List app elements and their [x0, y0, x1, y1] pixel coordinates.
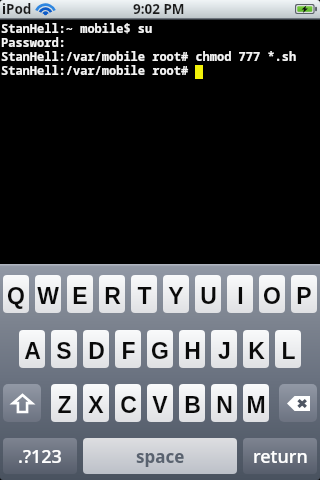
staticText: X	[88, 392, 104, 418]
staticText: U	[200, 283, 217, 309]
staticText: V	[152, 392, 168, 418]
button[interactable]: H	[179, 330, 205, 368]
staticText: B	[184, 392, 201, 418]
staticText: T	[137, 283, 152, 309]
staticText: S	[56, 338, 72, 364]
staticText: D	[88, 338, 105, 364]
button[interactable]: Y	[163, 275, 189, 313]
button[interactable]: P	[291, 275, 317, 313]
staticText: K	[248, 338, 265, 364]
button[interactable]: D	[83, 330, 109, 368]
button[interactable]: O	[259, 275, 285, 313]
button[interactable]: I	[227, 275, 253, 313]
staticText: N	[216, 392, 233, 418]
button[interactable]: Shift	[3, 384, 41, 422]
button[interactable]: B	[179, 384, 205, 422]
button[interactable]: M	[243, 384, 269, 422]
button[interactable]: U	[195, 275, 221, 313]
button[interactable]: C	[115, 384, 141, 422]
button[interactable]: L	[275, 330, 301, 368]
button[interactable]: return	[243, 438, 317, 474]
button[interactable]: Backspace	[279, 384, 317, 422]
button[interactable]: space	[83, 438, 237, 474]
button[interactable]: F	[115, 330, 141, 368]
staticText: .?123	[18, 444, 62, 469]
staticText: W	[37, 283, 59, 309]
staticText: O	[263, 283, 281, 309]
button[interactable]: R	[99, 275, 125, 313]
staticText: R	[104, 283, 121, 309]
button[interactable]: S	[51, 330, 77, 368]
button[interactable]: X	[83, 384, 109, 422]
staticText: StanHell:/var/mobile root#	[1, 62, 196, 78]
staticText: H	[184, 338, 201, 364]
staticText: M	[246, 392, 266, 418]
staticText: L	[281, 338, 296, 364]
staticText: 9:02 PM	[133, 0, 185, 18]
staticText: Y	[168, 283, 184, 309]
button[interactable]: N	[211, 384, 237, 422]
button[interactable]: .?123	[3, 438, 77, 474]
staticText: StanHell:/var/mobile root# chmod 777 *.s…	[1, 48, 297, 64]
button[interactable]: W	[35, 275, 61, 313]
staticText: G	[151, 338, 169, 364]
staticText: F	[121, 338, 136, 364]
button[interactable]: Z	[51, 384, 77, 422]
button[interactable]: Q	[3, 275, 29, 313]
staticText: Z	[57, 392, 72, 418]
staticText: E	[72, 283, 88, 309]
button[interactable]: G	[147, 330, 173, 368]
button[interactable]: K	[243, 330, 269, 368]
staticText: C	[120, 392, 137, 418]
staticText: iPod	[2, 0, 32, 18]
button[interactable]: A	[19, 330, 45, 368]
button[interactable]: T	[131, 275, 157, 313]
button[interactable]: E	[67, 275, 93, 313]
staticText: StanHell:~ mobile$ su	[1, 20, 153, 36]
staticText: Q	[7, 283, 25, 309]
staticText: space	[136, 445, 185, 468]
staticText: I	[237, 283, 244, 309]
staticText: A	[24, 338, 41, 364]
button[interactable]: J	[211, 330, 237, 368]
staticText: Password:	[1, 34, 66, 50]
staticText: P	[296, 283, 312, 309]
button[interactable]: V	[147, 384, 173, 422]
staticText: J	[218, 338, 231, 364]
staticText: return	[253, 444, 308, 469]
